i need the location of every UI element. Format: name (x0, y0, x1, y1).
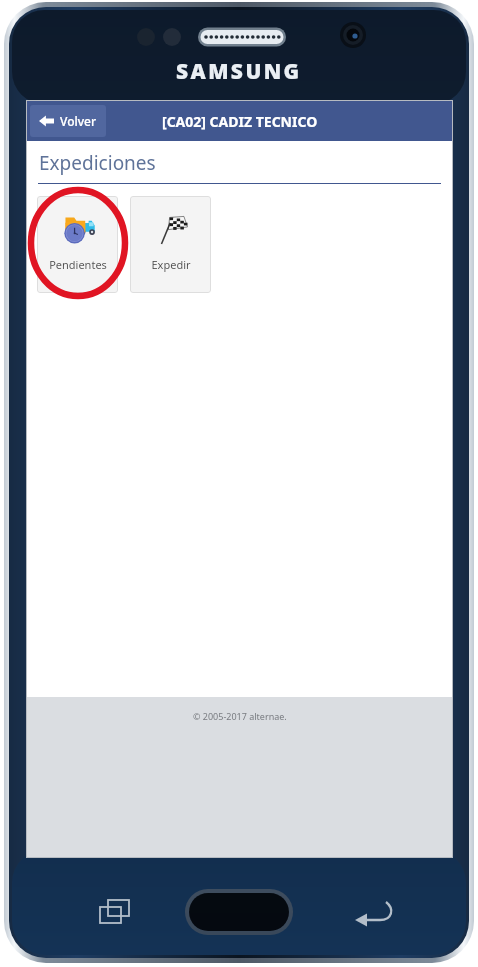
other: Expedir (154, 212, 188, 246)
other: Pendientes (59, 210, 97, 248)
staticText: © 2005-2017 alternae. (193, 710, 287, 722)
staticText: Volver (60, 113, 97, 129)
button[interactable]: Pendientes (37, 196, 118, 293)
staticText: Expediciones (39, 150, 156, 176)
staticText: [CA02] CADIZ TECNICO (162, 112, 318, 131)
button[interactable]: Expedir (130, 196, 211, 293)
button[interactable]: Volver (30, 105, 106, 137)
staticText: SAMSUNG (176, 57, 302, 86)
staticText: Expedir (151, 257, 191, 272)
staticText: Pendientes (49, 257, 107, 272)
